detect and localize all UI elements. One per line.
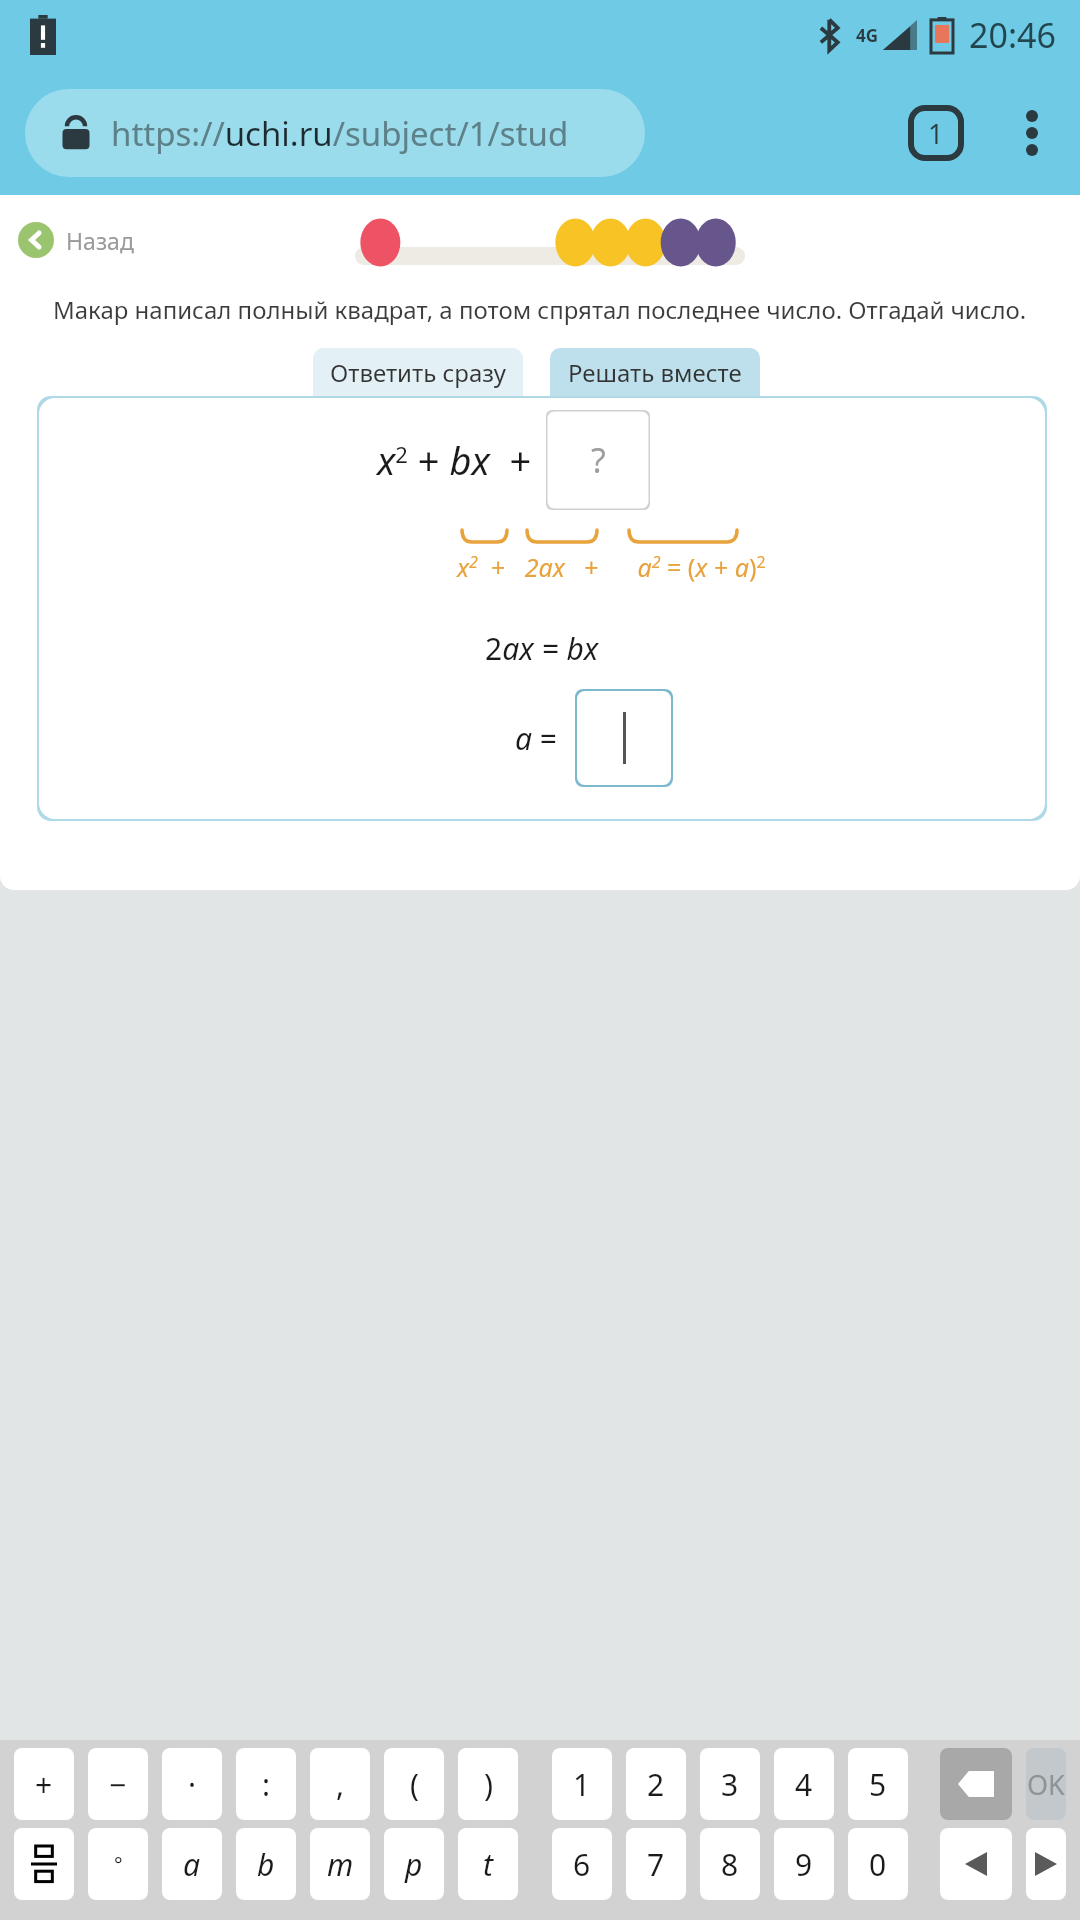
button[interactable]: 3 xyxy=(700,1748,760,1820)
staticText: Решать вместе xyxy=(568,356,742,389)
button[interactable]: ° xyxy=(88,1828,148,1900)
button[interactable]: 6 xyxy=(552,1828,612,1900)
button[interactable]: 5 xyxy=(848,1748,908,1820)
staticText: Ответить сразу xyxy=(330,356,506,389)
staticText: ° xyxy=(114,1851,123,1878)
staticText: · xyxy=(188,1764,197,1805)
staticText: Макар написал полный квадрат, а потом сп… xyxy=(53,293,1027,326)
staticText: https://uchi.ru/subject/1/stud xyxy=(111,111,569,156)
staticText: , xyxy=(336,1764,345,1805)
staticText: Назад xyxy=(66,225,134,256)
button[interactable]: 7 xyxy=(626,1828,686,1900)
button[interactable]: · xyxy=(162,1748,222,1820)
staticText: 1 xyxy=(573,1764,591,1805)
staticText: x2 + 2ax + a2 = (x + a)2 xyxy=(457,550,766,584)
staticText: x2 + bx + xyxy=(377,434,532,486)
staticText: 1 xyxy=(928,115,944,152)
button[interactable]: https://uchi.ru/subject/1/stud xyxy=(25,89,645,177)
button[interactable]: a xyxy=(162,1828,222,1900)
staticText: a = xyxy=(515,718,557,759)
staticText: + xyxy=(35,1764,53,1805)
button[interactable]: m xyxy=(310,1828,370,1900)
button[interactable]: 9 xyxy=(774,1828,834,1900)
button[interactable]: Назад xyxy=(14,218,138,262)
staticText: − xyxy=(109,1764,127,1805)
button[interactable]: OK xyxy=(1026,1748,1066,1820)
button[interactable]: 0 xyxy=(848,1828,908,1900)
button[interactable]: Move right xyxy=(1026,1828,1066,1900)
button[interactable]: 1 xyxy=(552,1748,612,1820)
button[interactable]: 8 xyxy=(700,1828,760,1900)
button[interactable]: − xyxy=(88,1748,148,1820)
staticText: m xyxy=(327,1844,354,1885)
staticText: 4G xyxy=(856,24,879,47)
staticText: 9 xyxy=(795,1844,813,1885)
staticText: 0 xyxy=(869,1844,887,1885)
staticText: ( xyxy=(410,1764,419,1805)
staticText: 5 xyxy=(869,1764,887,1805)
staticText: b xyxy=(257,1844,275,1885)
button[interactable]: Tabs xyxy=(888,85,984,181)
button[interactable]: b xyxy=(236,1828,296,1900)
button[interactable]: ? xyxy=(546,410,650,510)
staticText: t xyxy=(483,1844,493,1885)
staticText: 2ax = bx xyxy=(485,628,599,669)
staticText: 8 xyxy=(721,1844,739,1885)
button[interactable]: + xyxy=(14,1748,74,1820)
staticText: 2 xyxy=(647,1764,665,1805)
button[interactable]: Ответить сразу xyxy=(313,348,523,396)
button[interactable]: ) xyxy=(458,1748,518,1820)
button[interactable]: 2 xyxy=(626,1748,686,1820)
button[interactable]: ( xyxy=(384,1748,444,1820)
button[interactable]: Решать вместе xyxy=(550,348,760,396)
button[interactable]: , xyxy=(310,1748,370,1820)
staticText: : xyxy=(262,1764,271,1805)
button[interactable]: More options xyxy=(984,85,1080,181)
staticText: 20:46 xyxy=(969,12,1056,58)
staticText: ? xyxy=(591,437,606,483)
button[interactable] xyxy=(575,689,673,787)
staticText: 4 xyxy=(795,1764,813,1805)
staticText: 6 xyxy=(573,1844,591,1885)
staticText: a xyxy=(183,1844,201,1885)
button[interactable]: Move left xyxy=(940,1828,1012,1900)
button[interactable]: : xyxy=(236,1748,296,1820)
staticText: 3 xyxy=(721,1764,739,1805)
button[interactable]: p xyxy=(384,1828,444,1900)
staticText: OK xyxy=(1027,1766,1065,1803)
staticText: 7 xyxy=(647,1844,665,1885)
button[interactable]: 4 xyxy=(774,1748,834,1820)
button[interactable] xyxy=(14,1828,74,1900)
staticText: p xyxy=(405,1844,423,1885)
button[interactable]: t xyxy=(458,1828,518,1900)
button[interactable]: Backspace xyxy=(940,1748,1012,1820)
staticText: ) xyxy=(484,1764,493,1805)
